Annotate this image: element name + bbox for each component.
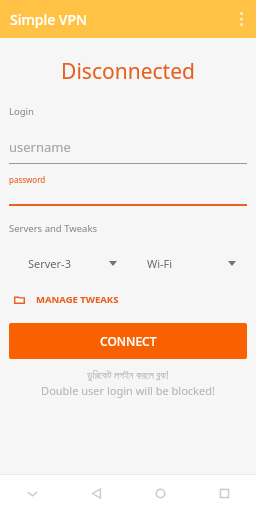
staticText: CONNECT xyxy=(100,333,157,349)
staticText: Simple VPN xyxy=(10,10,87,29)
staticText: Server-3 xyxy=(28,256,71,271)
button[interactable]: Recents xyxy=(192,474,256,512)
staticText: Double user login will be blocked! xyxy=(9,383,247,398)
button[interactable]: password xyxy=(9,174,247,206)
staticText: MANAGE TWEAKS xyxy=(36,293,119,306)
button[interactable]: Wi-Fi xyxy=(128,251,247,276)
staticText: username xyxy=(9,138,71,156)
staticText: Login xyxy=(9,105,34,118)
button[interactable]: Server-3 xyxy=(9,251,128,276)
button[interactable]: Home xyxy=(128,474,192,512)
button[interactable]: Back xyxy=(64,474,128,512)
button[interactable]: CONNECT xyxy=(9,323,247,359)
staticText: Wi-Fi xyxy=(147,256,173,271)
staticText: Servers and Tweaks xyxy=(9,222,98,235)
button[interactable]: username xyxy=(9,138,247,164)
button[interactable]: Hide keyboard xyxy=(0,474,64,512)
staticText: ডুপ্লিকেট লগইন করলে ব্লক! xyxy=(9,368,247,382)
button[interactable]: More options xyxy=(226,4,256,34)
button[interactable]: MANAGE TWEAKS xyxy=(9,290,125,309)
staticText: password xyxy=(9,174,46,185)
staticText: Disconnected xyxy=(9,57,247,86)
